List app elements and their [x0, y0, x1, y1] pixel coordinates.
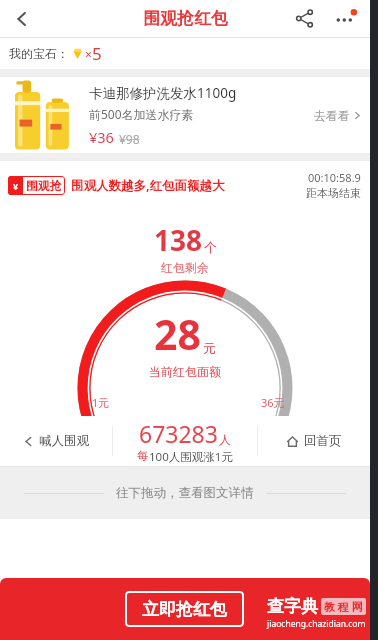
staticText: 围观抢	[26, 178, 62, 193]
staticText: 1元	[92, 395, 110, 410]
staticText: 138	[154, 221, 203, 259]
staticText: 我的宝石：	[9, 46, 69, 61]
staticText: 围观人数越多,红包面额越大	[71, 177, 225, 194]
staticText: 喊人围观	[39, 433, 89, 449]
staticText: 人	[219, 432, 231, 447]
staticText: 回首页	[304, 433, 342, 449]
staticText: 673283	[139, 418, 218, 449]
staticText: 红包剩余	[161, 260, 209, 275]
staticText: 往下拖动，查看图文详情	[116, 485, 254, 501]
staticText: 前500名加送水疗素	[89, 106, 194, 122]
button[interactable]: More options	[324, 0, 366, 37]
staticText: 元	[203, 340, 216, 356]
staticText: 立即抢红包	[142, 599, 227, 620]
staticText: 去看看	[314, 108, 350, 123]
staticText: 28	[154, 306, 201, 362]
staticText: ×	[85, 46, 92, 62]
staticText: 5	[92, 42, 102, 65]
staticText: 每	[137, 449, 149, 463]
button[interactable]: 673283	[113, 416, 257, 466]
staticText: 距本场结束	[306, 186, 361, 200]
button[interactable]: 卡迪那修护洗发水1100g	[0, 77, 370, 153]
staticText: 00:10:58.9	[308, 170, 361, 185]
staticText: 教 程 网	[324, 599, 363, 614]
staticText: 36元	[261, 395, 285, 410]
staticText: ¥36	[89, 127, 114, 147]
staticText: 卡迪那修护洗发水1100g	[89, 84, 237, 102]
staticText: 围观抢红包	[143, 8, 228, 29]
button[interactable]: 立即抢红包	[125, 591, 244, 627]
staticText: 个	[204, 239, 217, 255]
button[interactable]: Back	[0, 0, 44, 37]
button[interactable]: 回首页	[258, 416, 370, 466]
staticText: 100人围观涨1元	[149, 449, 233, 465]
staticText: jiaocheng.chazidian.com	[267, 618, 366, 630]
button[interactable]: Share	[284, 0, 324, 37]
staticText: ¥	[13, 180, 19, 192]
button[interactable]: 喊人围观	[0, 416, 112, 466]
staticText: 查字典	[267, 596, 318, 617]
staticText: 当前红包面额	[149, 364, 221, 379]
staticText: ¥98	[119, 131, 140, 147]
